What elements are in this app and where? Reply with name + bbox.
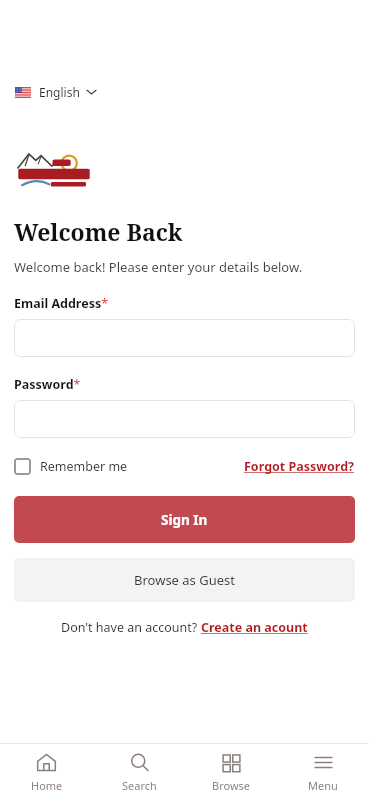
staticText: Browse	[212, 778, 251, 793]
button[interactable]: Home	[0, 744, 93, 800]
button[interactable]: Menu	[277, 744, 369, 800]
staticText: Email Address*	[14, 295, 109, 312]
staticText: Password*	[14, 376, 81, 393]
staticText: Search	[122, 778, 157, 793]
staticText: Home	[31, 778, 63, 793]
button[interactable]: Sign In	[14, 496, 355, 543]
staticText: Menu	[308, 778, 338, 793]
button[interactable]: Forgot Password?	[244, 455, 355, 478]
button[interactable]: Browse	[185, 744, 277, 800]
staticText: Create an acount	[201, 619, 308, 636]
staticText: Forgot Password?	[244, 458, 355, 475]
staticText: Browse as Guest	[134, 571, 235, 589]
staticText: Welcome Back	[14, 216, 183, 247]
staticText: English	[39, 84, 80, 100]
button[interactable]: Browse as Guest	[14, 558, 355, 602]
staticText: Don't have an account?	[61, 619, 201, 636]
button[interactable]	[14, 400, 355, 438]
button[interactable]: Search	[93, 744, 185, 800]
button[interactable]	[14, 319, 355, 357]
staticText: Remember me	[40, 458, 128, 475]
button[interactable]: Create an acount	[201, 619, 308, 636]
button[interactable]: English	[14, 82, 97, 102]
button[interactable]: Remember me	[14, 455, 128, 478]
staticText: Welcome back! Please enter your details …	[14, 258, 303, 276]
staticText: Sign In	[161, 511, 208, 529]
